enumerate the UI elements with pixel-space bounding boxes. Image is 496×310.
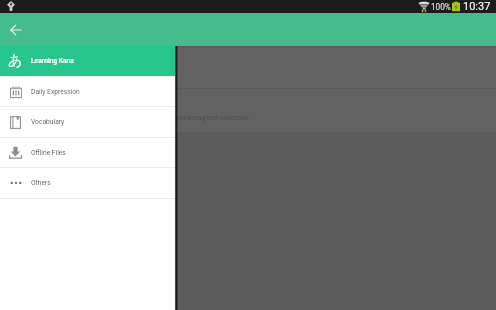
staticText: Offline Files — [31, 149, 66, 157]
button[interactable]: Navigate up — [4, 18, 28, 42]
staticText: Daily Expression — [31, 88, 80, 96]
button[interactable]: Offline Files — [0, 138, 175, 167]
button[interactable]: Vocabulary — [0, 107, 175, 137]
button[interactable]: Daily Expression — [0, 77, 175, 106]
staticText: あ — [8, 52, 23, 70]
button[interactable]: Others — [0, 168, 175, 198]
staticText: Vocabulary — [31, 118, 65, 126]
button[interactable]: あ — [0, 46, 175, 76]
staticText: Learning Kana — [31, 57, 74, 65]
staticText: Check your right and wrong test collecti… — [124, 114, 251, 122]
staticText: Others — [31, 179, 51, 187]
staticText: 100% — [431, 2, 451, 12]
staticText: 10:37 — [463, 0, 491, 13]
